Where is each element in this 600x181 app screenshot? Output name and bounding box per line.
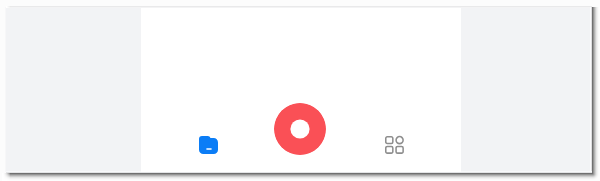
button[interactable]: Take photo — [274, 103, 326, 155]
button[interactable]: Modes — [375, 126, 413, 164]
button[interactable]: Gallery — [188, 125, 228, 165]
